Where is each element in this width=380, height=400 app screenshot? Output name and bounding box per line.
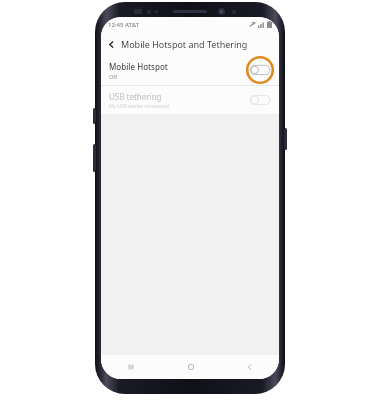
staticText: USB tethering	[109, 91, 162, 102]
button[interactable]: Mobile Hotspot	[101, 55, 279, 85]
button[interactable]: Recents	[101, 355, 161, 379]
staticText: Mobile Hotspot	[109, 61, 168, 72]
button[interactable]: USB tethering	[101, 86, 279, 114]
staticText: No USB device connected	[109, 103, 169, 110]
staticText: 12:45 AT&T	[108, 21, 140, 29]
button[interactable]: Back	[220, 355, 279, 379]
staticText: Mobile Hotspot and Tethering	[121, 38, 248, 50]
staticText: Off	[109, 73, 118, 80]
button[interactable]: Back	[101, 34, 121, 54]
button[interactable]: Mobile Hotspot toggle	[250, 64, 270, 76]
button[interactable]: USB tethering toggle	[250, 94, 270, 106]
button[interactable]: Home	[161, 355, 220, 379]
